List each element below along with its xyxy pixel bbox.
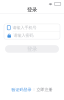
staticText: 立即注册 [36,87,52,92]
button[interactable]: 请输入手机号 [4,24,60,31]
button[interactable]: 验证码登录 [12,87,32,92]
staticText: 登录 [27,6,37,13]
staticText: 请输入密码 [13,33,33,38]
button[interactable]: 请输入密码 [4,32,60,39]
button[interactable]: 立即注册 [36,87,52,92]
staticText: 登录 [27,46,37,52]
staticText: 请输入手机号 [12,25,36,30]
button[interactable]: 登录 [5,45,59,53]
staticText: 验证码登录 [12,87,32,92]
